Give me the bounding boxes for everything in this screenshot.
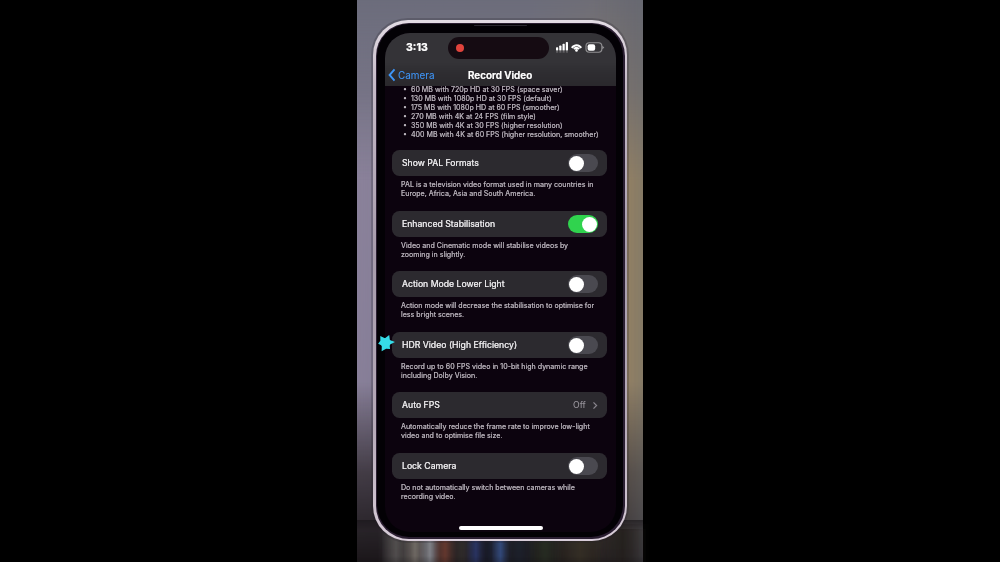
staticText: PAL is a television video format used in…	[401, 180, 594, 198]
staticText: • 400 MB with 4K at 60 FPS (higher resol…	[403, 130, 599, 139]
button[interactable]: HDR Video (High Efficiency)	[568, 336, 598, 354]
button[interactable]: Enhanced Stabilisation	[568, 215, 598, 233]
staticText: Action Mode Lower Light	[402, 279, 505, 290]
button[interactable]: Action Mode Lower Light	[392, 271, 607, 297]
staticText: • 60 MB with 720p HD at 30 FPS (space sa…	[403, 85, 563, 94]
staticText: • 270 MB with 4K at 24 FPS (film style)	[403, 112, 536, 121]
button[interactable]: Camera	[385, 66, 441, 84]
button[interactable]: Auto FPS	[392, 392, 607, 418]
button[interactable]: Action Mode Lower Light	[568, 275, 598, 293]
button[interactable]: Lock Camera	[568, 457, 598, 475]
staticText: • 350 MB with 4K at 30 FPS (higher resol…	[403, 121, 563, 130]
staticText: HDR Video (High Efficiency)	[402, 340, 518, 351]
staticText: 3:13	[406, 41, 428, 54]
staticText: • 175 MB with 1080p HD at 60 FPS (smooth…	[403, 103, 560, 112]
button[interactable]: Enhanced Stabilisation	[392, 211, 607, 237]
staticText: Automatically reduce the frame rate to i…	[401, 422, 590, 440]
staticText: • 130 MB with 1080p HD at 30 FPS (defaul…	[403, 94, 552, 103]
staticText: Camera	[398, 69, 435, 81]
staticText: Action mode will decrease the stabilisat…	[401, 301, 595, 319]
button[interactable]: HDR Video (High Efficiency)	[392, 332, 607, 358]
staticText: Auto FPS	[402, 400, 440, 411]
staticText: Lock Camera	[402, 461, 457, 472]
button[interactable]: Lock Camera	[392, 453, 607, 479]
staticText: Do not automatically switch between came…	[401, 483, 575, 501]
button[interactable]: Show PAL Formats	[392, 150, 607, 176]
staticText: Video and Cinematic mode will stabilise …	[401, 241, 569, 259]
staticText: Off	[573, 400, 586, 411]
staticText: Record Video	[468, 69, 533, 81]
button[interactable]: Show PAL Formats	[568, 154, 598, 172]
staticText: Show PAL Formats	[402, 158, 479, 169]
staticText: Record up to 60 FPS video in 10-bit high…	[401, 362, 588, 380]
staticText: Enhanced Stabilisation	[402, 219, 496, 230]
